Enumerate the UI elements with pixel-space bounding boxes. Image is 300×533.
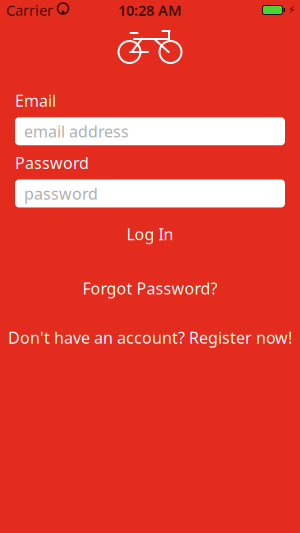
staticText: Don't have an account? Register now! — [8, 327, 292, 348]
staticText: ⚡︎ — [288, 4, 295, 16]
button[interactable]: Don't have an account? Register now! — [0, 323, 300, 352]
staticText: Password — [15, 152, 89, 173]
staticText: Log In — [126, 223, 173, 245]
staticText: Email — [15, 90, 56, 111]
staticText: 10:28 AM — [118, 0, 182, 20]
staticText: password — [24, 183, 98, 204]
staticText: Carrier — [6, 0, 53, 20]
button[interactable]: Forgot Password? — [0, 274, 300, 303]
staticText: Forgot Password? — [82, 278, 217, 299]
button[interactable]: Log In — [0, 219, 300, 249]
staticText: email address — [24, 121, 129, 142]
